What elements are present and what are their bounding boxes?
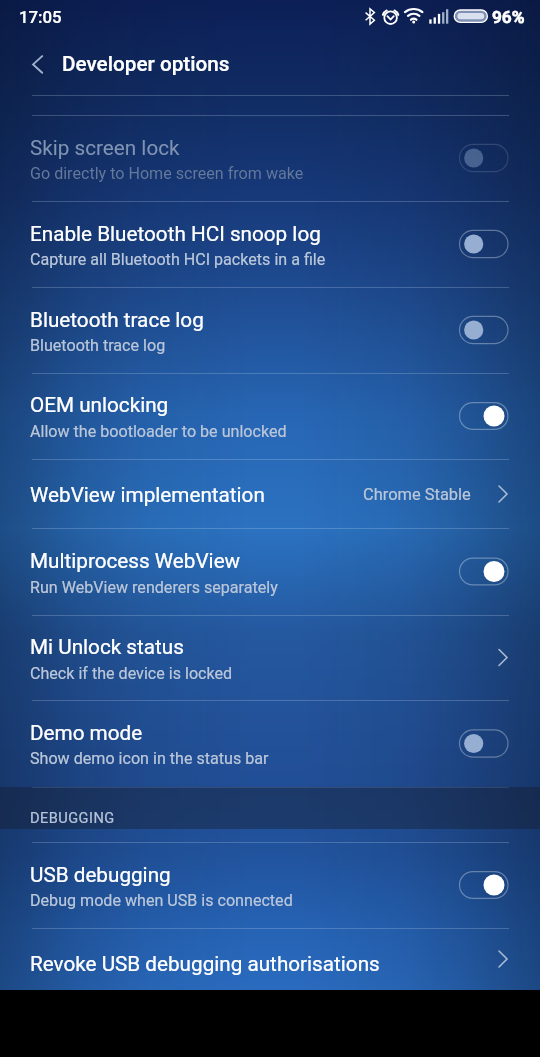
staticText: WebView implementation [30, 483, 265, 507]
staticText: Mi Unlock status [30, 635, 184, 659]
staticText: Revoke USB debugging authorisations [30, 952, 380, 976]
staticText: Skip screen lock [30, 136, 180, 160]
button[interactable]: Enable Bluetooth HCI snoop log [0, 201, 540, 287]
button[interactable]: Back [13, 36, 63, 92]
button[interactable]: Revoke USB debugging authorisations [0, 928, 540, 990]
staticText: Bluetooth trace log [30, 336, 166, 355]
staticText: Show demo icon in the status bar [30, 749, 269, 768]
staticText: Check if the device is locked [30, 664, 233, 683]
staticText: Chrome Stable [363, 485, 471, 504]
staticText: USB debugging [30, 863, 171, 887]
staticText: Allow the bootloader to be unlocked [30, 422, 287, 441]
staticText: DEBUGGING [30, 809, 115, 826]
staticText: Multiprocess WebView [30, 549, 241, 573]
button[interactable]: Mi Unlock status [0, 615, 540, 700]
button[interactable]: WebView implementation [0, 459, 540, 529]
button[interactable]: USB debugging [0, 842, 540, 928]
staticText: Debug mode when USB is connected [30, 891, 293, 910]
staticText: Go directly to Home screen from wake [30, 164, 304, 183]
button[interactable]: Bluetooth trace log [0, 287, 540, 373]
button[interactable]: Demo mode [0, 700, 540, 787]
button[interactable]: Multiprocess WebView [0, 528, 540, 615]
staticText: 96% [492, 7, 525, 27]
staticText: Demo mode [30, 721, 143, 745]
staticText: Developer options [62, 52, 230, 76]
button[interactable]: Skip screen lock [0, 115, 540, 201]
staticText: Enable Bluetooth HCI snoop log [30, 222, 321, 246]
staticText: OEM unlocking [30, 393, 169, 417]
staticText: 17:05 [19, 7, 62, 27]
staticText: Run WebView renderers separately [30, 578, 278, 597]
staticText: Bluetooth trace log [30, 308, 204, 332]
staticText: Capture all Bluetooth HCI packets in a f… [30, 250, 326, 269]
button[interactable]: OEM unlocking [0, 373, 540, 459]
